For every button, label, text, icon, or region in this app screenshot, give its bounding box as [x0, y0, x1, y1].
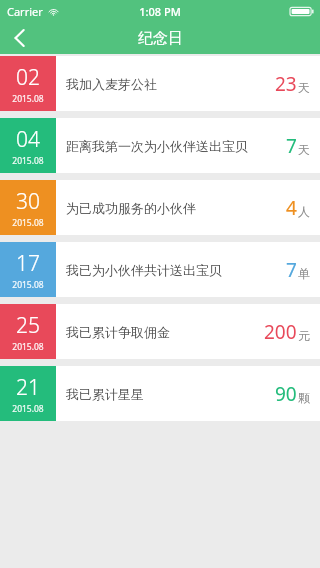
- staticText: 30: [16, 187, 40, 216]
- staticText: 2015.08: [12, 341, 44, 353]
- staticText: 我加入麦芽公社: [66, 76, 269, 92]
- staticText: 距离我第一次为小伙伴送出宝贝: [66, 138, 280, 154]
- staticText: 25: [16, 311, 40, 340]
- staticText: 2015.08: [12, 403, 44, 415]
- staticText: 90: [275, 381, 297, 407]
- staticText: 17: [16, 249, 40, 278]
- button[interactable]: Back: [0, 22, 38, 54]
- staticText: Carrier: [7, 4, 43, 19]
- staticText: 纪念日: [138, 29, 183, 48]
- staticText: 2015.08: [12, 155, 44, 167]
- button[interactable]: 21: [0, 366, 320, 421]
- staticText: 4: [286, 195, 297, 221]
- staticText: 人: [298, 204, 310, 219]
- staticText: 200: [264, 319, 297, 345]
- staticText: 02: [16, 63, 40, 92]
- staticText: 天: [298, 80, 310, 95]
- button[interactable]: 02: [0, 56, 320, 111]
- button[interactable]: 25: [0, 304, 320, 359]
- staticText: 7: [286, 133, 297, 159]
- button[interactable]: 04: [0, 118, 320, 173]
- staticText: 2015.08: [12, 217, 44, 229]
- staticText: 7: [286, 257, 297, 283]
- staticText: 2015.08: [12, 93, 44, 105]
- button[interactable]: 30: [0, 180, 320, 235]
- staticText: 我已累计争取佣金: [66, 324, 258, 340]
- staticText: 1:08 PM: [139, 4, 181, 19]
- staticText: 04: [16, 125, 40, 154]
- staticText: 元: [298, 328, 310, 343]
- staticText: 我已为小伙伴共计送出宝贝: [66, 262, 280, 278]
- staticText: 天: [298, 142, 310, 157]
- staticText: 单: [298, 266, 310, 281]
- staticText: 21: [16, 373, 40, 402]
- staticText: 2015.08: [12, 279, 44, 291]
- staticText: 我已累计星星: [66, 386, 269, 402]
- staticText: 23: [275, 71, 297, 97]
- staticText: 颗: [298, 390, 310, 405]
- staticText: 为已成功服务的小伙伴: [66, 200, 280, 216]
- button[interactable]: 17: [0, 242, 320, 297]
